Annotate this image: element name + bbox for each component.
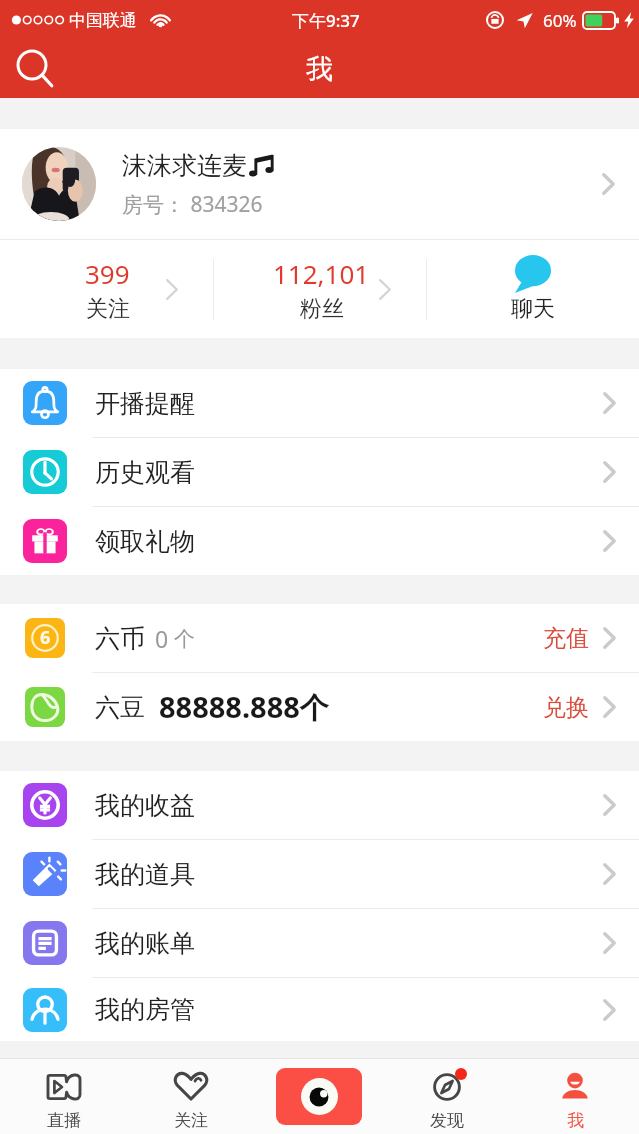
staticText: 88888.888个 <box>159 687 329 727</box>
button[interactable]: 领取礼物 <box>0 507 639 575</box>
staticText: 下午9:37 <box>292 9 360 32</box>
staticText: 我 <box>306 52 333 86</box>
staticText: 我的道具 <box>95 859 195 890</box>
button[interactable]: 我的账单 <box>0 909 639 978</box>
staticText: 聊天 <box>511 295 555 323</box>
button[interactable]: Search <box>9 43 61 95</box>
button[interactable]: 历史观看 <box>0 438 639 507</box>
staticText: 兑换 <box>543 693 589 722</box>
button[interactable]: 399 <box>0 240 213 338</box>
button[interactable]: 聊天 <box>427 240 639 338</box>
staticText: 粉丝 <box>300 295 344 323</box>
button[interactable]: 我的道具 <box>0 840 639 909</box>
staticText: 充值 <box>543 624 589 653</box>
staticText: 沫沫求连麦 <box>122 150 247 181</box>
button[interactable]: Record <box>276 1068 362 1125</box>
staticText: 领取礼物 <box>95 526 195 557</box>
staticText: 6 <box>40 625 51 650</box>
button[interactable]: 我的收益 <box>0 771 639 840</box>
staticText: 0 <box>155 623 169 654</box>
button[interactable]: 112,101 <box>214 240 426 338</box>
button[interactable]: 我 <box>511 1059 639 1134</box>
staticText: 个 <box>174 626 195 652</box>
button[interactable]: 6 <box>0 604 639 673</box>
staticText: 我的账单 <box>95 928 195 959</box>
staticText: 112,101 <box>273 256 370 291</box>
button[interactable]: 沫沫求连麦 <box>0 129 639 239</box>
staticText: 六币 <box>95 623 145 654</box>
staticText: 历史观看 <box>95 457 195 488</box>
staticText: 开播提醒 <box>95 388 195 419</box>
button[interactable]: 关注 <box>127 1059 255 1134</box>
staticText: 我的收益 <box>95 790 195 821</box>
staticText: 房号： 834326 <box>122 190 263 219</box>
button[interactable]: 直播 <box>0 1059 127 1134</box>
staticText: 直播 <box>47 1110 81 1131</box>
button[interactable]: 发现 <box>383 1059 511 1134</box>
staticText: 60% <box>543 9 577 32</box>
staticText: 六豆 <box>95 692 145 723</box>
staticText: 我 <box>567 1110 584 1131</box>
staticText: 我的房管 <box>95 994 195 1025</box>
button[interactable]: 我的房管 <box>0 978 639 1041</box>
staticText: 发现 <box>430 1110 464 1131</box>
staticText: 关注 <box>174 1110 208 1131</box>
staticText: 关注 <box>86 295 130 323</box>
staticText: 中国联通 <box>69 10 137 31</box>
staticText: 399 <box>85 256 130 291</box>
button[interactable]: 开播提醒 <box>0 369 639 438</box>
button[interactable]: 六豆 <box>0 673 639 741</box>
